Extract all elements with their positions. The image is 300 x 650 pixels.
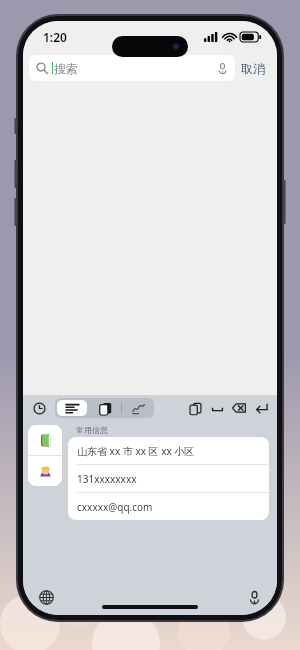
staticText: 取消 bbox=[241, 61, 265, 76]
button[interactable]: 搜索 bbox=[29, 55, 235, 81]
button[interactable]: Switch keyboard bbox=[35, 586, 57, 608]
button[interactable]: Return bbox=[250, 397, 272, 419]
button[interactable]: 山东省 xx 市 xx 区 xx 小区 bbox=[68, 437, 269, 465]
staticText: 131xxxxxxxx bbox=[77, 472, 137, 486]
button[interactable]: Contacts bbox=[28, 456, 62, 486]
staticText: 山东省 xx 市 xx 区 xx 小区 bbox=[77, 444, 195, 458]
button[interactable]: 取消 bbox=[235, 57, 271, 80]
button[interactable]: Address book bbox=[28, 425, 62, 455]
button[interactable]: Autofill bbox=[28, 397, 50, 419]
button[interactable]: Paste bbox=[184, 397, 206, 419]
other: Voice search bbox=[217, 63, 228, 74]
button[interactable]: Text bbox=[57, 400, 87, 416]
button[interactable]: cxxxxx@qq.com bbox=[68, 493, 269, 520]
staticText: 1:20 bbox=[43, 29, 67, 45]
staticText: 常用信息 bbox=[76, 425, 108, 435]
button[interactable]: Delete bbox=[228, 397, 250, 419]
staticText: 搜索 bbox=[54, 61, 78, 76]
staticText: cxxxxx@qq.com bbox=[77, 500, 153, 514]
button[interactable]: Scribble bbox=[122, 398, 154, 418]
button[interactable]: Clipboard bbox=[89, 398, 121, 418]
button[interactable]: 131xxxxxxxx bbox=[68, 465, 269, 493]
button[interactable]: Space bbox=[206, 397, 228, 419]
button[interactable]: Dictation bbox=[243, 586, 265, 608]
